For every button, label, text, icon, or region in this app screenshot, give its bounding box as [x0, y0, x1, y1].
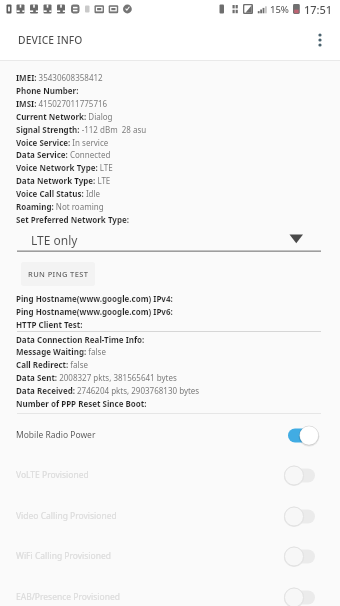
- button[interactable]: VoLTE Provisioned: [0, 459, 340, 491]
- staticText: IMSI: 415027011775716: [16, 98, 108, 109]
- staticText: Message Waiting: false: [16, 346, 106, 357]
- button[interactable]: LTE only: [17, 230, 321, 252]
- staticText: Current Network: Dialog: [16, 111, 113, 122]
- staticText: Call Redirect: false: [16, 359, 89, 370]
- staticText: Set Preferred Network Type:: [16, 214, 129, 225]
- staticText: HTTP Client Test:: [16, 319, 83, 330]
- staticText: Ping Hostname(www.google.com) IPv4:: [16, 293, 173, 304]
- staticText: Data Received: 2746204 pkts, 2903768130 …: [16, 385, 200, 396]
- staticText: WiFi Calling Provisioned: [16, 550, 111, 562]
- staticText: LTE only: [31, 232, 78, 248]
- staticText: VoLTE Provisioned: [16, 469, 89, 481]
- staticText: Voice Network Type: LTE: [16, 162, 113, 173]
- button[interactable]: Mobile Radio Power: [0, 419, 340, 451]
- staticText: Data Service: Connected: [16, 149, 111, 160]
- button[interactable]: WiFi Calling Provisioned: [0, 540, 340, 572]
- staticText: Roaming: Not roaming: [16, 201, 104, 212]
- staticText: DEVICE INFO: [18, 33, 83, 47]
- button[interactable]: RUN PING TEST: [21, 262, 95, 286]
- staticText: Signal Strength: -112 dBm 28 asu: [16, 124, 147, 135]
- staticText: Voice Service: In service: [16, 137, 109, 148]
- button[interactable]: Video Calling Provisioned: [0, 500, 340, 532]
- staticText: Data Sent: 2008327 pkts, 381565641 bytes: [16, 372, 177, 383]
- staticText: Data Connection Real-Time Info:: [16, 334, 145, 345]
- button[interactable]: More options: [303, 23, 337, 57]
- button[interactable]: EAB/Presence Provisioned: [0, 581, 340, 606]
- staticText: 17:51: [304, 2, 333, 17]
- staticText: EAB/Presence Provisioned: [16, 591, 120, 603]
- staticText: Ping Hostname(www.google.com) IPv6:: [16, 306, 173, 317]
- staticText: Video Calling Provisioned: [16, 510, 117, 522]
- staticText: Data Network Type: LTE: [16, 175, 111, 186]
- staticText: 15%: [270, 3, 289, 16]
- staticText: Phone Number:: [16, 85, 79, 96]
- staticText: IMEI: 35430608358412: [16, 72, 103, 83]
- staticText: Mobile Radio Power: [16, 429, 96, 441]
- staticText: Number of PPP Reset Since Boot:: [16, 398, 147, 409]
- staticText: Voice Call Status: Idle: [16, 188, 101, 199]
- staticText: RUN PING TEST: [28, 269, 89, 279]
